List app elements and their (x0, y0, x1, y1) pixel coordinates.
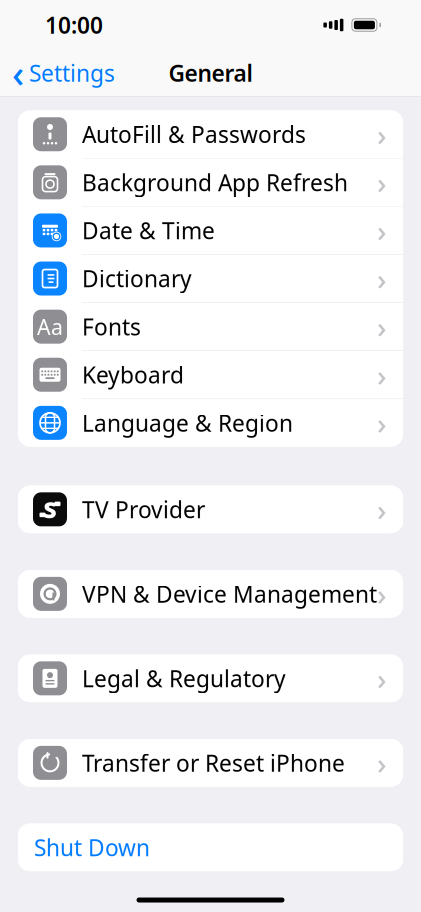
button[interactable]: S (18, 486, 403, 533)
staticText: Transfer or Reset iPhone (82, 748, 345, 778)
staticText: AutoFill & Passwords (82, 119, 306, 149)
staticText: › (377, 659, 387, 698)
staticText: › (377, 743, 387, 782)
staticText: Settings (29, 58, 115, 88)
staticText: General (168, 58, 252, 88)
button[interactable]: Keyboard (18, 351, 403, 399)
staticText: › (377, 163, 387, 202)
staticText: › (377, 211, 387, 250)
staticText: › (377, 259, 387, 298)
button[interactable]: Date & Time (18, 207, 403, 255)
staticText: TV Provider (82, 494, 205, 524)
button[interactable]: Legal & Regulatory (18, 655, 403, 702)
staticText: › (377, 307, 387, 346)
button[interactable]: Shut Down (18, 824, 403, 871)
staticText: › (377, 490, 387, 529)
staticText: Fonts (82, 312, 141, 342)
staticText: › (377, 115, 387, 154)
staticText: S (43, 494, 56, 524)
staticText: Keyboard (82, 360, 184, 390)
staticText: VPN & Device Management (82, 579, 377, 609)
staticText: › (377, 574, 387, 613)
button[interactable]: VPN & Device Management (18, 570, 403, 618)
staticText: Aa (37, 312, 63, 341)
button[interactable]: ‹ (0, 42, 115, 104)
staticText: Date & Time (82, 215, 215, 245)
button[interactable]: Background App Refresh (18, 159, 403, 207)
staticText: Legal & Regulatory (82, 663, 286, 693)
staticText: › (377, 403, 387, 442)
button[interactable]: AutoFill & Passwords (18, 110, 403, 159)
button[interactable]: Aa (18, 303, 403, 351)
staticText: › (377, 355, 387, 394)
staticText: Background App Refresh (82, 167, 348, 197)
staticText: Dictionary (82, 263, 192, 294)
staticText: ‹ (12, 48, 24, 98)
button[interactable]: Dictionary (18, 255, 403, 303)
staticText: 10:00 (45, 10, 103, 40)
button[interactable]: Transfer or Reset iPhone (18, 739, 403, 787)
button[interactable]: Language & Region (18, 399, 403, 447)
staticText: Language & Region (82, 408, 293, 438)
staticText: Shut Down (34, 832, 150, 862)
